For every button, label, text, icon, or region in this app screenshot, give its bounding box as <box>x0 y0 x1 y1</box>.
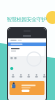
staticText: 智慧校园安全守护 <box>6 16 46 23</box>
